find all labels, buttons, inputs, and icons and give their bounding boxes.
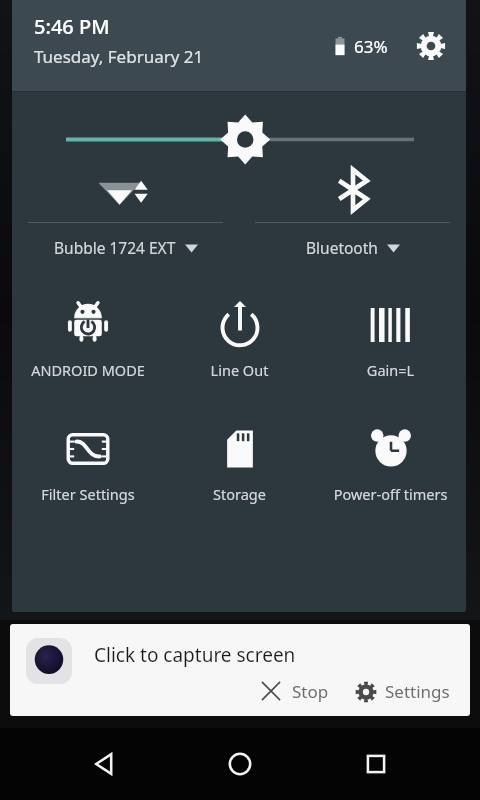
staticText: 5:46 PM [34,13,110,40]
button[interactable]: Back [72,732,136,796]
button[interactable]: Storage [164,426,315,504]
button[interactable]: Settings [349,676,456,707]
button[interactable]: Bubble 1724 EXT [12,158,239,276]
staticText: Click to capture screen [94,642,296,668]
staticText: Storage [164,484,315,504]
staticText: Gain=L [315,360,466,380]
button[interactable]: Recent apps [344,732,408,796]
button[interactable]: Click to capture screen [10,624,470,716]
staticText: Filter Settings [12,484,164,504]
button[interactable]: Settings [414,29,448,63]
button[interactable]: Line Out [164,302,315,380]
staticText: Tuesday, February 21 [34,45,204,68]
button[interactable]: Home [208,732,272,796]
button[interactable]: Bluetooth [239,158,466,276]
button[interactable]: Brightness [12,92,466,158]
button[interactable]: Gain=L [315,302,466,380]
staticText: ANDROID MODE [12,360,164,380]
staticText: Line Out [164,360,315,380]
staticText: Stop [292,680,329,703]
staticText: Settings [385,680,450,703]
staticText: Power-off timers [315,484,466,504]
button[interactable]: Stop [252,674,335,708]
staticText: Bluetooth [306,237,378,258]
button[interactable]: ANDROID MODE [12,302,164,380]
staticText: Bubble 1724 EXT [54,237,176,258]
button[interactable]: Power-off timers [315,426,466,504]
staticText: 63% [354,35,388,58]
button[interactable]: Filter Settings [12,426,164,504]
button[interactable]: 5:46 PM [12,0,466,91]
